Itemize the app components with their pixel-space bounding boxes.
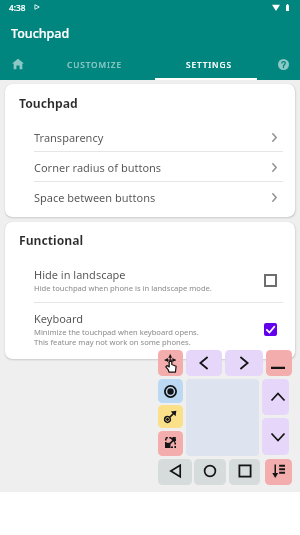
button[interactable]: Minimize [266,350,292,376]
button[interactable]: Right [225,350,263,376]
staticText: This feature may not work on some phones… [34,337,191,347]
staticText: Touchpad [11,25,70,42]
staticText: Functional [19,232,84,249]
button[interactable]: Back [158,459,192,485]
staticText: Minimize the touchpad when keyboard open… [34,327,199,337]
button[interactable]: Click [158,379,183,403]
staticText: Hide in landscape [34,267,126,282]
staticText: SETTINGS [186,59,232,70]
button[interactable]: Scroll up [262,379,289,415]
button[interactable]: Space between buttons [5,182,295,212]
button[interactable]: Unchecked [264,274,277,287]
button[interactable]: Home [0,48,41,80]
button[interactable]: Help [269,48,300,80]
staticText: Corner radius of buttons [34,160,162,175]
button[interactable]: Hide [265,459,292,485]
button[interactable]: Recents [229,459,260,485]
button[interactable]: Corner radius of buttons [5,152,295,182]
button[interactable]: Home [194,459,226,485]
button[interactable]: Resize [158,431,183,456]
button[interactable]: Scroll down [262,418,289,455]
staticText: Transparency [34,130,104,145]
staticText: Touchpad [19,95,78,112]
staticText: Hide touchpad when phone is in landscape… [34,283,212,293]
button[interactable]: SETTINGS [148,48,269,80]
staticText: Space between buttons [34,190,156,205]
button[interactable]: Left [186,350,222,376]
button[interactable]: Drag [158,405,183,428]
button[interactable]: Checked [264,323,277,336]
button[interactable]: CUSTOMIZE [41,48,148,80]
staticText: 4:38 [9,2,26,13]
staticText: Keyboard [34,311,84,326]
button[interactable]: Keyboard [5,303,295,347]
button[interactable]: Transparency [5,122,295,152]
staticText: CUSTOMIZE [67,59,122,70]
button[interactable]: Pan [158,350,183,376]
button[interactable]: Hide in landscape [5,258,295,303]
